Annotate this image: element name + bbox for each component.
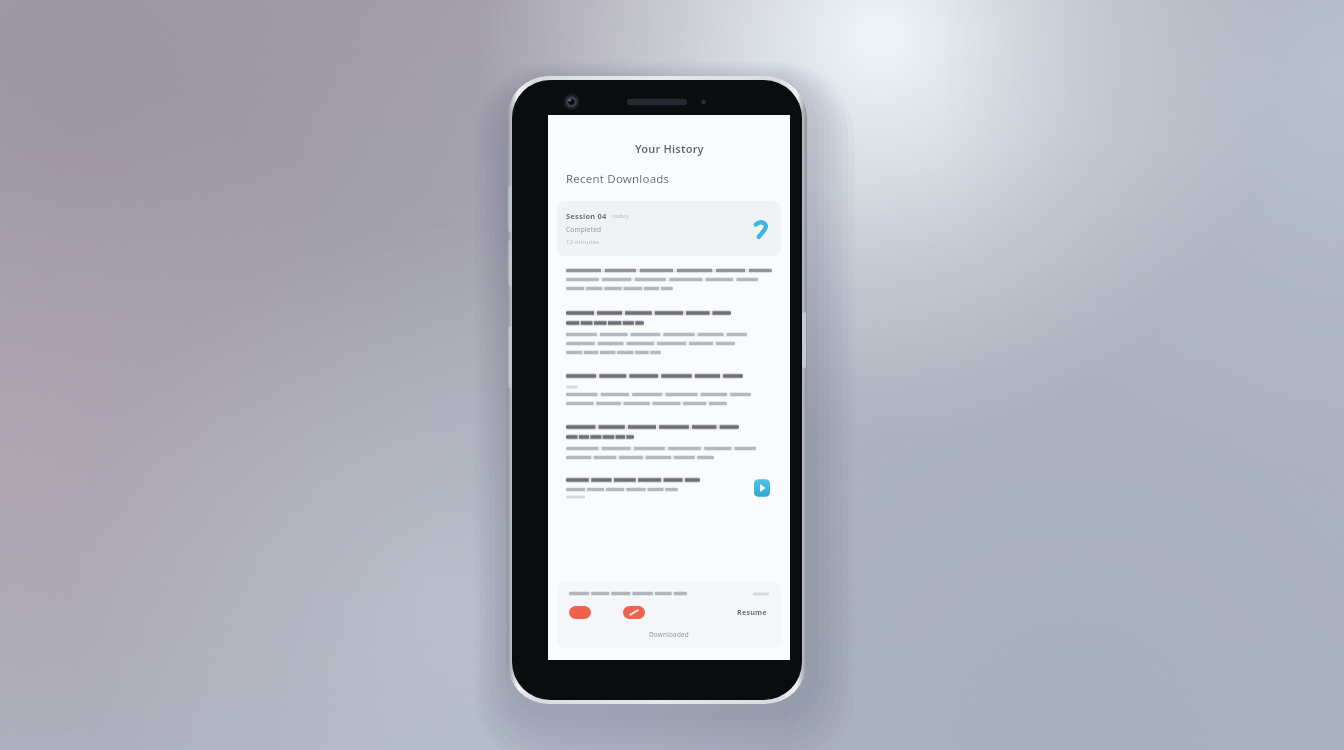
staticText: Recent Downloads — [566, 171, 670, 187]
staticText: Downloaded — [649, 630, 689, 639]
staticText: today — [612, 212, 629, 220]
button[interactable]: Resume — [735, 605, 769, 619]
button[interactable]: Session 04 — [557, 201, 781, 256]
staticText: 12 minutes — [566, 238, 600, 246]
button[interactable]: Play — [548, 475, 790, 501]
button[interactable] — [548, 372, 790, 407]
staticText: Session 04 — [566, 211, 607, 221]
staticText: Completed — [566, 225, 602, 234]
button[interactable]: Play — [752, 478, 772, 498]
button[interactable] — [548, 309, 790, 356]
staticText: Resume — [737, 607, 767, 617]
button[interactable]: Block — [623, 606, 645, 619]
button[interactable]: Open — [750, 218, 772, 240]
button[interactable] — [548, 423, 790, 461]
button[interactable]: Delete — [569, 606, 591, 619]
staticText: Your History — [635, 141, 704, 156]
